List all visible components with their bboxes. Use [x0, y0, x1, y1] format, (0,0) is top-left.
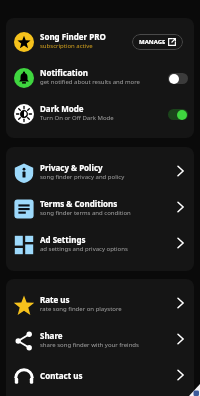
staticText: Turn On or Off Dark Mode	[40, 114, 114, 122]
staticText: ad settings and privacy options	[40, 245, 128, 253]
button[interactable]: MANAGE	[132, 34, 183, 50]
staticText: share song finder with your freinds	[40, 341, 139, 349]
button[interactable]: Song Finder PRO	[6, 24, 194, 60]
button[interactable]: Rate us	[6, 287, 194, 323]
staticText: Ad Settings	[40, 234, 86, 245]
button[interactable]: Share	[6, 323, 194, 359]
button[interactable]: Notification	[168, 73, 188, 84]
staticText: Contact us	[40, 370, 83, 381]
staticText: MANAGE	[139, 38, 166, 46]
button[interactable]: Contact us	[6, 359, 194, 395]
button[interactable]: Notification	[6, 60, 194, 96]
staticText: song finder privacy and policy	[40, 173, 125, 181]
staticText: Rate us	[40, 294, 70, 305]
staticText: Notification	[40, 67, 88, 78]
staticText: Dark Mode	[40, 103, 84, 114]
button[interactable]: Privacy & Policy	[6, 155, 194, 191]
button[interactable]: Ad Settings	[6, 227, 194, 263]
staticText: Song Finder PRO	[40, 31, 106, 42]
staticText: rate song finder on playstore	[40, 305, 122, 313]
staticText: Terms & Conditions	[40, 198, 118, 209]
button[interactable]: Dark Mode	[168, 109, 188, 120]
staticText: Share	[40, 330, 63, 341]
staticText: Privacy & Policy	[40, 162, 103, 173]
staticText: get notified about results and more	[40, 78, 140, 86]
staticText: subscription active	[40, 42, 93, 50]
button[interactable]: Terms & Conditions	[6, 191, 194, 227]
staticText: song finder terms and condition	[40, 209, 131, 217]
button[interactable]: Dark Mode	[6, 96, 194, 132]
